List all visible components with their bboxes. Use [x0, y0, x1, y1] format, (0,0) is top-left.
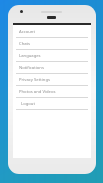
staticText: Privacy Settings [19, 77, 50, 83]
staticText: Account [19, 29, 35, 35]
staticText: Logout [21, 101, 35, 107]
button[interactable]: Languages [13, 50, 91, 62]
staticText: Photos and Videos [19, 89, 56, 95]
staticText: Chats [19, 41, 31, 47]
button[interactable]: Chats [13, 38, 91, 50]
button[interactable]: Account [13, 26, 91, 38]
staticText: Languages [19, 53, 41, 59]
button[interactable]: Logout [13, 98, 91, 110]
button[interactable]: Notifications [13, 62, 91, 74]
staticText: Notifications [19, 65, 44, 71]
button[interactable]: Privacy Settings [13, 74, 91, 86]
button[interactable]: Photos and Videos [13, 86, 91, 98]
